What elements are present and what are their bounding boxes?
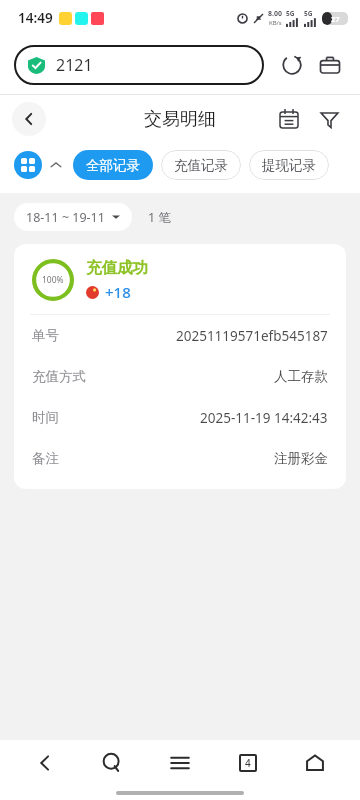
button[interactable]: Tabs: [225, 740, 271, 786]
staticText: 27: [331, 14, 340, 24]
button[interactable]: Back: [22, 740, 68, 786]
staticText: KB/s: [269, 19, 282, 27]
button[interactable]: 100%: [14, 244, 346, 489]
button[interactable]: Search: [89, 740, 135, 786]
staticText: 8.00: [268, 9, 282, 19]
staticText: 2025-11-19 14:42:43: [200, 409, 328, 427]
staticText: 4: [245, 756, 251, 770]
staticText: 14:49: [18, 9, 53, 27]
button[interactable]: Toolbox: [314, 49, 346, 81]
button[interactable]: 18-11 ~ 19-11: [14, 203, 132, 231]
button[interactable]: Back: [12, 102, 46, 136]
button[interactable]: Refresh: [276, 49, 308, 81]
staticText: 20251119571efb545187: [176, 327, 328, 345]
button[interactable]: 2121: [14, 45, 264, 85]
button[interactable]: 提现记录: [249, 150, 329, 180]
button[interactable]: Calendar: [272, 102, 306, 136]
button[interactable]: 全部记录: [73, 150, 153, 180]
staticText: 18-11 ~ 19-11: [26, 209, 105, 226]
staticText: 充值方式: [32, 368, 86, 385]
staticText: 备注: [32, 450, 59, 467]
button[interactable]: Menu: [157, 740, 203, 786]
staticText: 交易明细: [144, 108, 216, 131]
staticText: 1 笔: [148, 209, 171, 226]
staticText: 时间: [32, 409, 59, 426]
staticText: 注册彩金: [274, 450, 328, 467]
staticText: 单号: [32, 327, 59, 344]
button[interactable]: Home: [292, 740, 338, 786]
staticText: 100%: [42, 274, 64, 286]
staticText: 充值成功: [86, 258, 148, 278]
staticText: 5G: [304, 9, 313, 18]
button[interactable]: Filter: [312, 102, 346, 136]
staticText: 5G: [286, 9, 295, 18]
staticText: 全部记录: [86, 157, 140, 174]
staticText: 充值记录: [174, 157, 228, 174]
button[interactable]: Grid view: [14, 151, 42, 179]
staticText: 提现记录: [262, 157, 316, 174]
staticText: 2121: [56, 54, 93, 76]
staticText: +18: [105, 282, 131, 302]
staticText: 人工存款: [274, 368, 328, 385]
button[interactable]: 充值记录: [161, 150, 241, 180]
